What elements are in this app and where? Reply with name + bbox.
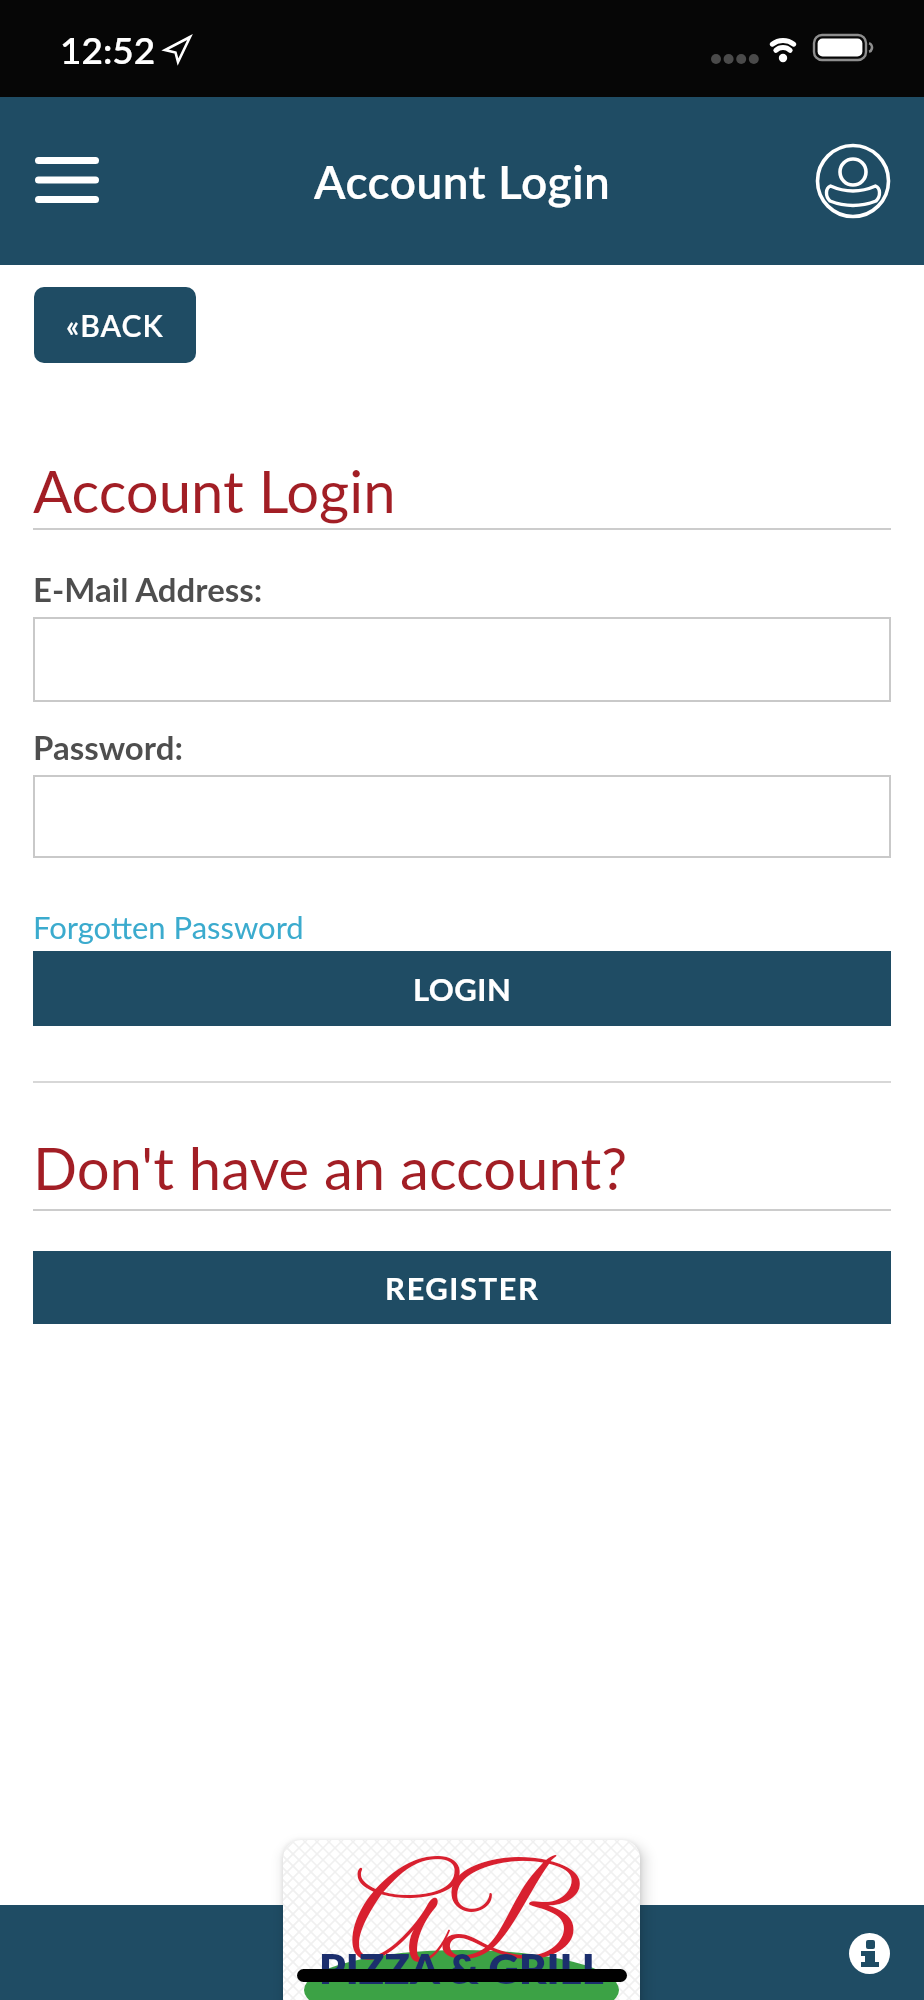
staticText: Account Login — [314, 154, 611, 209]
staticText: Don't have an account? — [33, 1133, 628, 1203]
staticText: Account Login — [33, 456, 396, 526]
button[interactable] — [809, 137, 897, 225]
button[interactable] — [20, 142, 114, 220]
staticText: PIZZA & GRILL — [319, 1943, 604, 1993]
staticText: E-Mail Address: — [33, 569, 263, 609]
staticText: 12:52 — [60, 27, 156, 71]
button[interactable]: AB — [283, 1840, 640, 2000]
button[interactable] — [33, 617, 891, 702]
button[interactable] — [33, 775, 891, 858]
button[interactable]: Forgotten Password — [33, 908, 304, 945]
staticText: LOGIN — [413, 970, 512, 1007]
staticText: AB — [350, 1846, 574, 2000]
staticText: REGISTER — [385, 1269, 540, 1306]
button[interactable]: «BACK — [34, 287, 196, 363]
button[interactable]: REGISTER — [33, 1251, 891, 1324]
staticText: Password: — [33, 727, 183, 767]
staticText: «BACK — [66, 307, 164, 343]
button[interactable] — [849, 1933, 890, 1974]
button[interactable]: LOGIN — [33, 951, 891, 1026]
